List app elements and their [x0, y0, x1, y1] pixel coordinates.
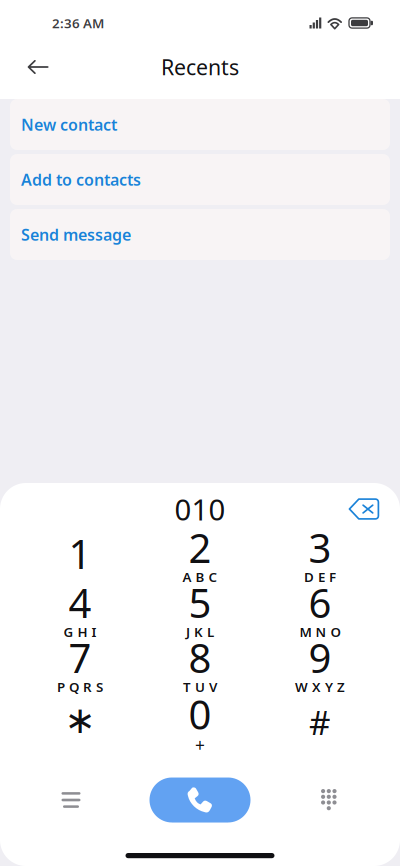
staticText: Add to contacts: [21, 169, 141, 190]
button[interactable]: Back: [13, 50, 63, 84]
staticText: 3: [308, 521, 331, 574]
staticText: New contact: [21, 114, 117, 135]
button[interactable]: 4: [20, 578, 140, 633]
button[interactable]: Send message: [10, 209, 390, 260]
staticText: F: [329, 568, 336, 586]
staticText: 2: [188, 521, 211, 574]
staticText: V: [209, 678, 217, 696]
button[interactable]: 8: [140, 633, 260, 688]
button[interactable]: 5: [140, 578, 260, 633]
staticText: 1: [68, 527, 91, 580]
staticText: I: [91, 623, 96, 641]
button[interactable]: Add to contacts: [10, 154, 390, 205]
staticText: R: [83, 678, 92, 696]
button[interactable]: 2: [140, 523, 260, 578]
button[interactable]: Delete: [338, 492, 390, 526]
staticText: 4: [68, 576, 91, 629]
staticText: Y: [325, 678, 333, 696]
staticText: #: [309, 700, 331, 744]
button[interactable]: ∗: [20, 688, 140, 743]
staticText: Recents: [161, 53, 239, 81]
button[interactable]: 0: [140, 688, 260, 743]
staticText: O: [330, 623, 340, 641]
button[interactable]: More options: [43, 778, 99, 822]
staticText: P: [57, 678, 65, 696]
button[interactable]: Keypad: [301, 778, 357, 822]
staticText: Q: [69, 678, 79, 696]
staticText: A: [182, 568, 191, 586]
staticText: B: [195, 568, 204, 586]
staticText: +: [195, 733, 205, 756]
staticText: N: [315, 623, 326, 641]
staticText: 5: [188, 576, 211, 629]
staticText: L: [207, 623, 214, 641]
staticText: 9: [308, 631, 331, 684]
staticText: W: [295, 678, 308, 696]
staticText: E: [318, 568, 325, 586]
button[interactable]: 7: [20, 633, 140, 688]
button[interactable]: 9: [260, 633, 380, 688]
staticText: Z: [337, 678, 345, 696]
staticText: 8: [188, 631, 211, 684]
staticText: G: [63, 623, 73, 641]
staticText: X: [312, 678, 321, 696]
button[interactable]: #: [260, 688, 380, 743]
staticText: 0: [188, 687, 211, 741]
staticText: U: [195, 678, 205, 696]
staticText: 010: [174, 489, 225, 528]
button[interactable]: 1: [20, 523, 140, 578]
staticText: 2:36 AM: [52, 14, 104, 32]
staticText: Send message: [21, 224, 131, 245]
staticText: T: [183, 678, 191, 696]
staticText: C: [208, 568, 217, 586]
staticText: J: [186, 623, 190, 641]
staticText: 6: [308, 576, 331, 629]
button[interactable]: New contact: [10, 99, 390, 150]
staticText: H: [77, 623, 87, 641]
staticText: 7: [68, 631, 91, 684]
button[interactable]: Call: [149, 777, 250, 822]
staticText: K: [194, 623, 203, 641]
staticText: M: [299, 623, 311, 641]
staticText: S: [96, 678, 103, 696]
button[interactable]: 3: [260, 523, 380, 578]
staticText: ∗: [64, 699, 95, 741]
button[interactable]: 6: [260, 578, 380, 633]
staticText: D: [304, 568, 314, 586]
